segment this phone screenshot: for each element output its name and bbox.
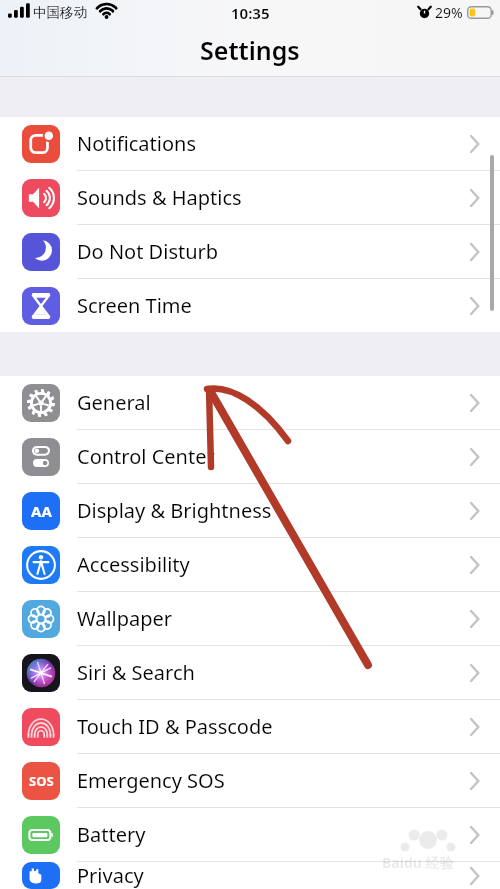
button[interactable]: Sounds & Haptics — [0, 171, 500, 225]
button[interactable]: General — [0, 376, 500, 430]
staticText: Control Center — [77, 443, 215, 470]
button[interactable]: AA — [0, 484, 500, 538]
staticText: Screen Time — [77, 292, 192, 319]
button[interactable]: Touch ID & Passcode — [0, 700, 500, 754]
staticText: Privacy — [77, 862, 144, 889]
button[interactable]: SOS — [0, 754, 500, 808]
staticText: General — [77, 389, 151, 416]
staticText: 29% — [435, 3, 463, 22]
button[interactable]: Siri & Search — [0, 646, 500, 700]
button[interactable]: Wallpaper — [0, 592, 500, 646]
staticText: SOS — [29, 772, 54, 790]
button[interactable]: Privacy — [0, 862, 500, 889]
staticText: Notifications — [77, 130, 196, 157]
staticText: Display & Brightness — [77, 497, 272, 524]
staticText: Accessibility — [77, 551, 190, 578]
staticText: Baidu 经验 — [382, 853, 454, 872]
staticText: Touch ID & Passcode — [77, 713, 273, 740]
button[interactable]: Battery — [0, 808, 500, 862]
button[interactable]: Do Not Disturb — [0, 225, 500, 279]
staticText: Do Not Disturb — [77, 238, 219, 265]
staticText: Wallpaper — [77, 605, 173, 632]
staticText: Settings — [200, 33, 300, 67]
staticText: Siri & Search — [77, 659, 195, 686]
button[interactable]: Control Center — [0, 430, 500, 484]
staticText: 中国移动 — [33, 4, 87, 21]
staticText: Emergency SOS — [77, 767, 225, 794]
staticText: Battery — [77, 821, 146, 848]
staticText: Sounds & Haptics — [77, 184, 242, 211]
staticText: 10:35 — [231, 3, 270, 23]
staticText: AA — [31, 501, 52, 521]
button[interactable]: Accessibility — [0, 538, 500, 592]
button[interactable]: Notifications — [0, 117, 500, 171]
button[interactable]: Screen Time — [0, 279, 500, 332]
